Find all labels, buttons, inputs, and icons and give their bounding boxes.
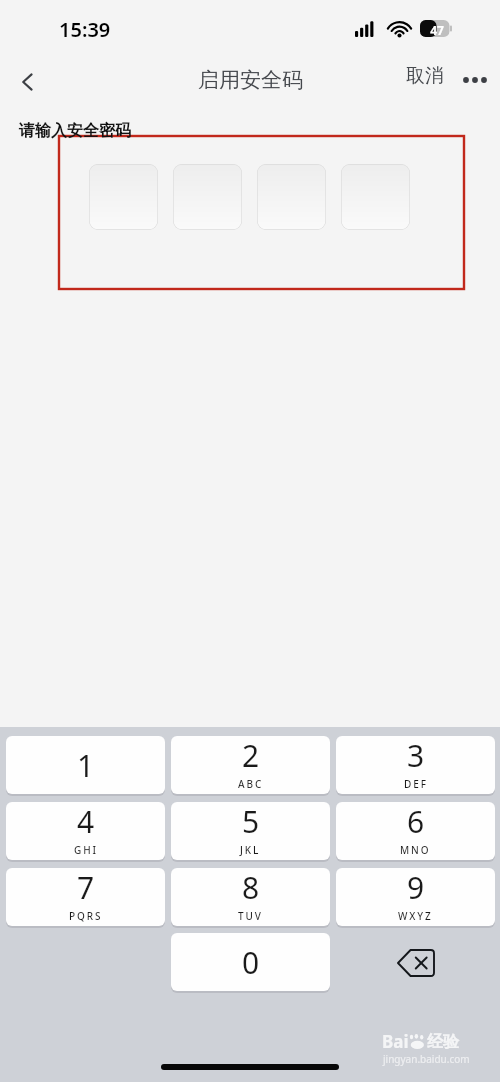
button[interactable]: 1	[6, 736, 165, 794]
staticText: JKL	[240, 843, 261, 857]
staticText: 3	[407, 736, 425, 776]
button[interactable]: 4	[6, 802, 165, 860]
button[interactable]: Backspace	[336, 933, 495, 992]
button[interactable]	[341, 164, 410, 230]
staticText: DEF	[404, 777, 428, 791]
button[interactable]: 5	[171, 802, 330, 860]
staticText: 47	[424, 22, 450, 38]
staticText: 8	[242, 868, 260, 908]
button[interactable]: 8	[171, 868, 330, 926]
button[interactable]: 取消	[406, 64, 444, 88]
button[interactable]: 0	[171, 933, 330, 991]
staticText: 6	[407, 802, 425, 842]
button[interactable]: 2	[171, 736, 330, 794]
button[interactable]: Back	[8, 62, 48, 102]
button[interactable]: 9	[336, 868, 495, 926]
button[interactable]	[89, 164, 158, 230]
staticText: 2	[242, 736, 260, 776]
staticText: 请输入安全密码	[19, 121, 131, 141]
staticText: TUV	[238, 909, 263, 923]
staticText: PQRS	[69, 909, 103, 923]
staticText: 4	[77, 802, 95, 842]
staticText: 15:39	[59, 16, 111, 43]
staticText: WXYZ	[398, 909, 433, 923]
button[interactable]	[173, 164, 242, 230]
staticText: Bai	[382, 1030, 409, 1053]
staticText: MNO	[400, 843, 431, 857]
staticText: 1	[77, 745, 95, 786]
staticText: GHI	[74, 843, 98, 857]
staticText: 5	[242, 802, 260, 842]
staticText: 7	[77, 868, 95, 908]
button[interactable]: 7	[6, 868, 165, 926]
staticText: ABC	[238, 777, 264, 791]
staticText: 经验	[427, 1032, 459, 1052]
staticText: 取消	[406, 64, 444, 88]
button[interactable]: More options	[455, 62, 495, 98]
staticText: 0	[242, 942, 260, 983]
staticText: 9	[407, 868, 425, 908]
button[interactable]: 6	[336, 802, 495, 860]
staticText: 启用安全码	[198, 67, 303, 93]
button[interactable]	[257, 164, 326, 230]
staticText: jingyan.baidu.com	[383, 1052, 470, 1066]
button[interactable]: 3	[336, 736, 495, 794]
